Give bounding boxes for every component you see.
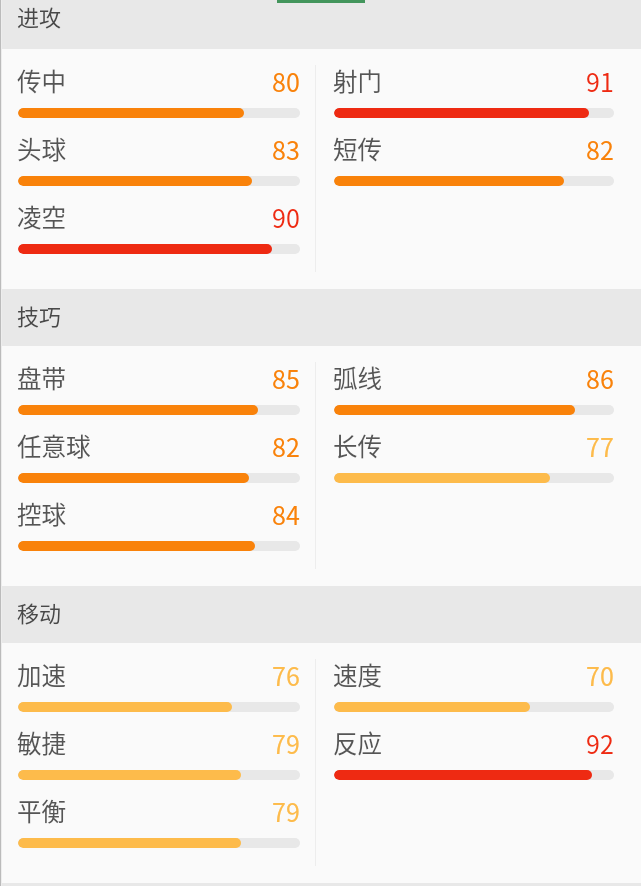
button[interactable]: 短传 bbox=[334, 132, 614, 200]
button[interactable]: 弧线 bbox=[334, 361, 614, 429]
staticText: 85 bbox=[272, 360, 300, 396]
button[interactable]: 控球 bbox=[18, 497, 300, 565]
button[interactable]: 凌空 bbox=[18, 200, 300, 268]
staticText: 盘带 bbox=[17, 360, 66, 395]
staticText: 控球 bbox=[17, 496, 66, 531]
staticText: 加速 bbox=[17, 657, 66, 692]
button[interactable]: 任意球 bbox=[18, 429, 300, 497]
staticText: 86 bbox=[586, 360, 614, 396]
button[interactable]: 速度 bbox=[334, 658, 614, 726]
button[interactable]: 进攻 bbox=[0, 0, 641, 49]
button[interactable]: 射门 bbox=[334, 64, 614, 132]
staticText: 70 bbox=[586, 657, 614, 693]
staticText: 77 bbox=[586, 428, 614, 464]
staticText: 凌空 bbox=[17, 199, 66, 234]
staticText: 82 bbox=[586, 131, 614, 167]
staticText: 速度 bbox=[333, 657, 382, 692]
staticText: 82 bbox=[272, 428, 300, 464]
button[interactable]: 平衡 bbox=[18, 794, 300, 862]
button[interactable]: 盘带 bbox=[18, 361, 300, 429]
staticText: 射门 bbox=[333, 63, 382, 98]
button[interactable]: 头球 bbox=[18, 132, 300, 200]
staticText: 弧线 bbox=[333, 360, 382, 395]
button[interactable]: 反应 bbox=[334, 726, 614, 794]
button[interactable]: 长传 bbox=[334, 429, 614, 497]
staticText: 头球 bbox=[17, 131, 66, 166]
staticText: 平衡 bbox=[17, 793, 66, 828]
button[interactable]: 技巧 bbox=[0, 289, 641, 346]
staticText: 短传 bbox=[333, 131, 382, 166]
staticText: 传中 bbox=[17, 63, 66, 98]
other: Selected tab indicator bbox=[0, 0, 641, 3]
button[interactable]: 移动 bbox=[0, 586, 641, 643]
staticText: 76 bbox=[272, 657, 300, 693]
button[interactable]: 传中 bbox=[18, 64, 300, 132]
staticText: 92 bbox=[586, 725, 614, 761]
staticText: 移动 bbox=[17, 596, 62, 628]
staticText: 反应 bbox=[333, 725, 382, 760]
staticText: 80 bbox=[272, 63, 300, 99]
button[interactable]: 加速 bbox=[18, 658, 300, 726]
staticText: 长传 bbox=[333, 428, 382, 463]
staticText: 90 bbox=[272, 199, 300, 235]
staticText: 84 bbox=[272, 496, 300, 532]
staticText: 79 bbox=[272, 793, 300, 829]
staticText: 敏捷 bbox=[17, 725, 66, 760]
staticText: 进攻 bbox=[17, 0, 62, 32]
staticText: 91 bbox=[586, 63, 614, 99]
staticText: 79 bbox=[272, 725, 300, 761]
staticText: 技巧 bbox=[17, 299, 62, 331]
staticText: 任意球 bbox=[17, 428, 91, 463]
staticText: 83 bbox=[272, 131, 300, 167]
button[interactable]: 敏捷 bbox=[18, 726, 300, 794]
